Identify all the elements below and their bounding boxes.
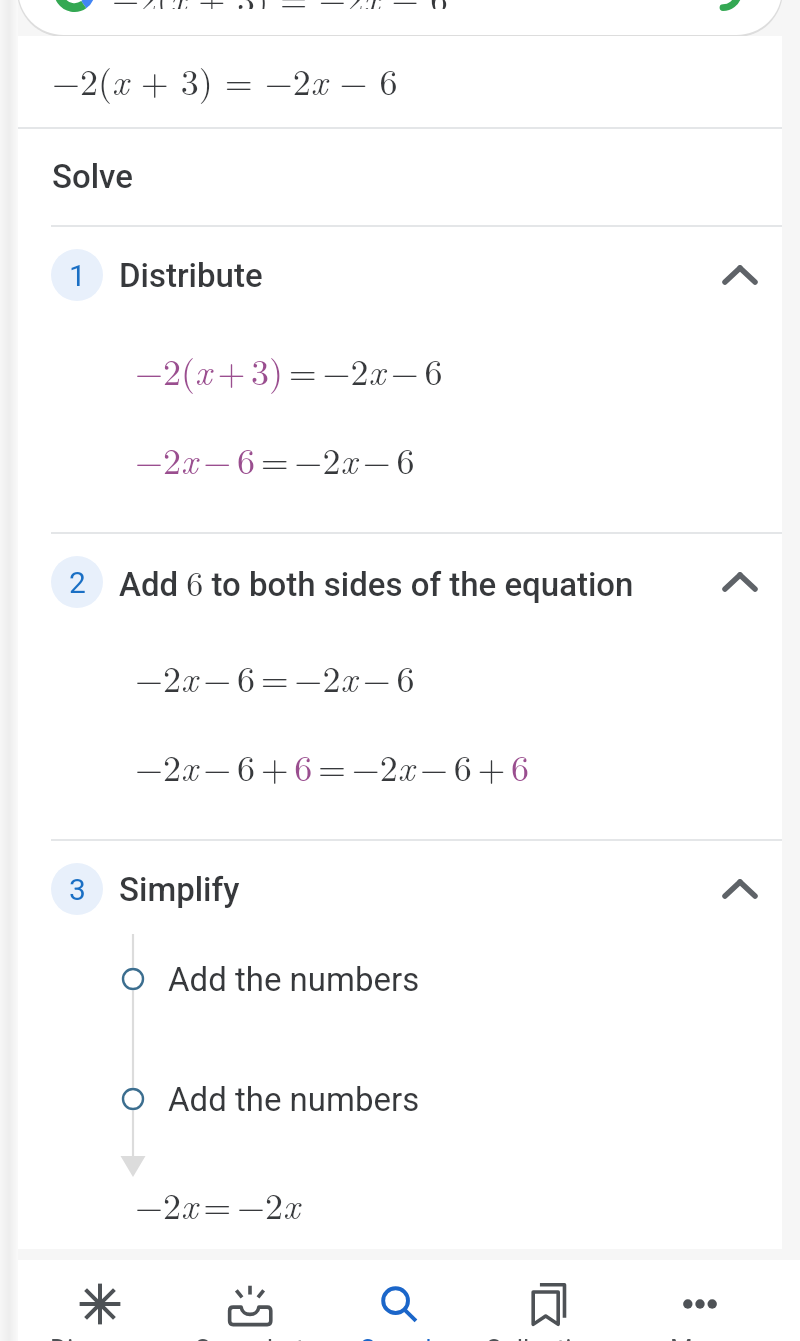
button[interactable]: Add the numbers xyxy=(18,1057,782,1141)
button[interactable]: Collections xyxy=(475,1260,625,1341)
button[interactable]: 3 xyxy=(18,841,782,937)
button[interactable]: 2 xyxy=(18,534,782,630)
button[interactable]: Search xyxy=(0,0,800,36)
staticText: −2(x + 3) = −2x − 6 xyxy=(135,344,443,395)
staticText: −2x = −2x xyxy=(135,1178,300,1229)
button[interactable]: 1 xyxy=(18,227,782,323)
staticText: −2(x + 3) = −2x − 6 xyxy=(52,54,398,105)
staticText: Search xyxy=(360,1334,440,1341)
button[interactable]: More xyxy=(625,1260,775,1341)
staticText: Add the numbers xyxy=(168,960,420,999)
button[interactable]: Snapshot xyxy=(175,1260,325,1341)
staticText: −2x − 6 = −2x − 6 xyxy=(135,433,415,484)
staticText: −2x − 6 = −2x − 6 xyxy=(135,651,415,702)
staticText: −2(x + 3) = −2x − 6 xyxy=(112,0,448,9)
staticText: 1 xyxy=(69,258,86,293)
staticText: Collections xyxy=(485,1334,615,1341)
staticText: 3 xyxy=(69,872,86,907)
button[interactable]: Search xyxy=(325,1260,475,1341)
staticText: Add the numbers xyxy=(168,1080,420,1119)
staticText: −2x − 6 + 6 = −2x − 6 + 6 xyxy=(135,740,530,791)
staticText: More xyxy=(670,1334,730,1341)
staticText: Add 6 to both sides of the equation xyxy=(119,558,634,606)
staticText: 2 xyxy=(69,565,86,600)
staticText: Discover xyxy=(50,1334,151,1341)
button[interactable]: Add the numbers xyxy=(18,937,782,1021)
button[interactable]: Collapse step xyxy=(710,245,770,305)
staticText: Solve xyxy=(52,157,133,196)
staticText: Snapshot xyxy=(195,1334,305,1341)
staticText: Distribute xyxy=(119,256,263,295)
button[interactable]: Collapse step xyxy=(710,552,770,612)
button[interactable]: Discover xyxy=(25,1260,175,1341)
button[interactable]: Collapse step xyxy=(710,859,770,919)
staticText: Simplify xyxy=(119,870,240,909)
